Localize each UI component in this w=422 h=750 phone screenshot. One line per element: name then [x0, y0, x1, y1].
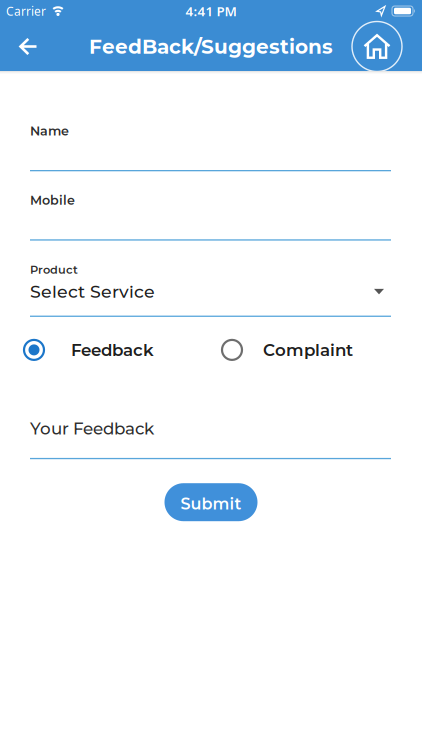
staticText: Carrier	[6, 3, 46, 19]
button[interactable]: Name	[30, 139, 391, 171]
button[interactable]: Complaint	[221, 339, 353, 361]
button[interactable]: Feedback	[23, 339, 154, 361]
staticText: Name	[30, 123, 69, 139]
staticText: Complaint	[263, 340, 353, 360]
button[interactable]: Your Feedback	[30, 418, 391, 459]
button[interactable]: Select Service	[30, 277, 391, 317]
staticText: Mobile	[30, 193, 75, 208]
staticText: Feedback	[71, 340, 154, 360]
button[interactable]: Submit	[164, 483, 257, 521]
staticText: 4:41 PM	[185, 2, 236, 20]
staticText: Product	[30, 263, 78, 276]
button[interactable]: Back	[0, 22, 37, 70]
staticText: Submit	[180, 494, 241, 513]
button[interactable]: Home	[352, 21, 402, 71]
staticText: Select Service	[30, 281, 155, 302]
staticText: FeedBack/Suggestions	[89, 34, 333, 59]
button[interactable]: Mobile	[30, 208, 391, 241]
staticText: Your Feedback	[30, 418, 154, 438]
